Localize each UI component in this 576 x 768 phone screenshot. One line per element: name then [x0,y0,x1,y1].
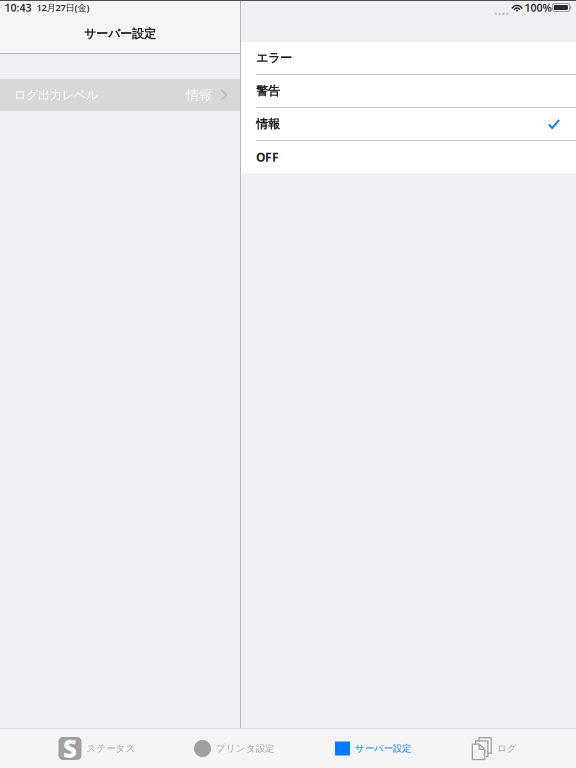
staticText: 12月27日(金) [36,1,89,14]
staticText: 100% [524,0,551,15]
staticText: サーバー設定 [84,26,156,41]
staticText: 情報 [186,87,212,103]
button[interactable]: 警告 [241,75,576,108]
staticText: ログ [497,743,517,754]
staticText: ステータス [86,743,135,754]
staticText: プリンタ設定 [216,743,274,754]
staticText: S [63,733,77,764]
staticText: OFF [256,149,279,165]
button[interactable]: ログ [465,729,521,768]
staticText: エラー [256,51,292,65]
staticText: ログ出力レベル [14,88,98,102]
button[interactable]: プリンタ設定 [190,729,278,768]
button[interactable]: エラー [241,42,576,75]
staticText: サーバー設定 [355,743,411,754]
button[interactable]: ログ出力レベル [0,79,240,111]
button[interactable]: 情報 [241,108,576,141]
button[interactable]: サーバー設定 [331,729,415,768]
button[interactable]: OFF [241,141,576,173]
staticText: 情報 [256,117,280,131]
staticText: 警告 [256,84,280,98]
staticText: 10:43 [4,0,31,15]
button[interactable]: S [54,729,139,768]
